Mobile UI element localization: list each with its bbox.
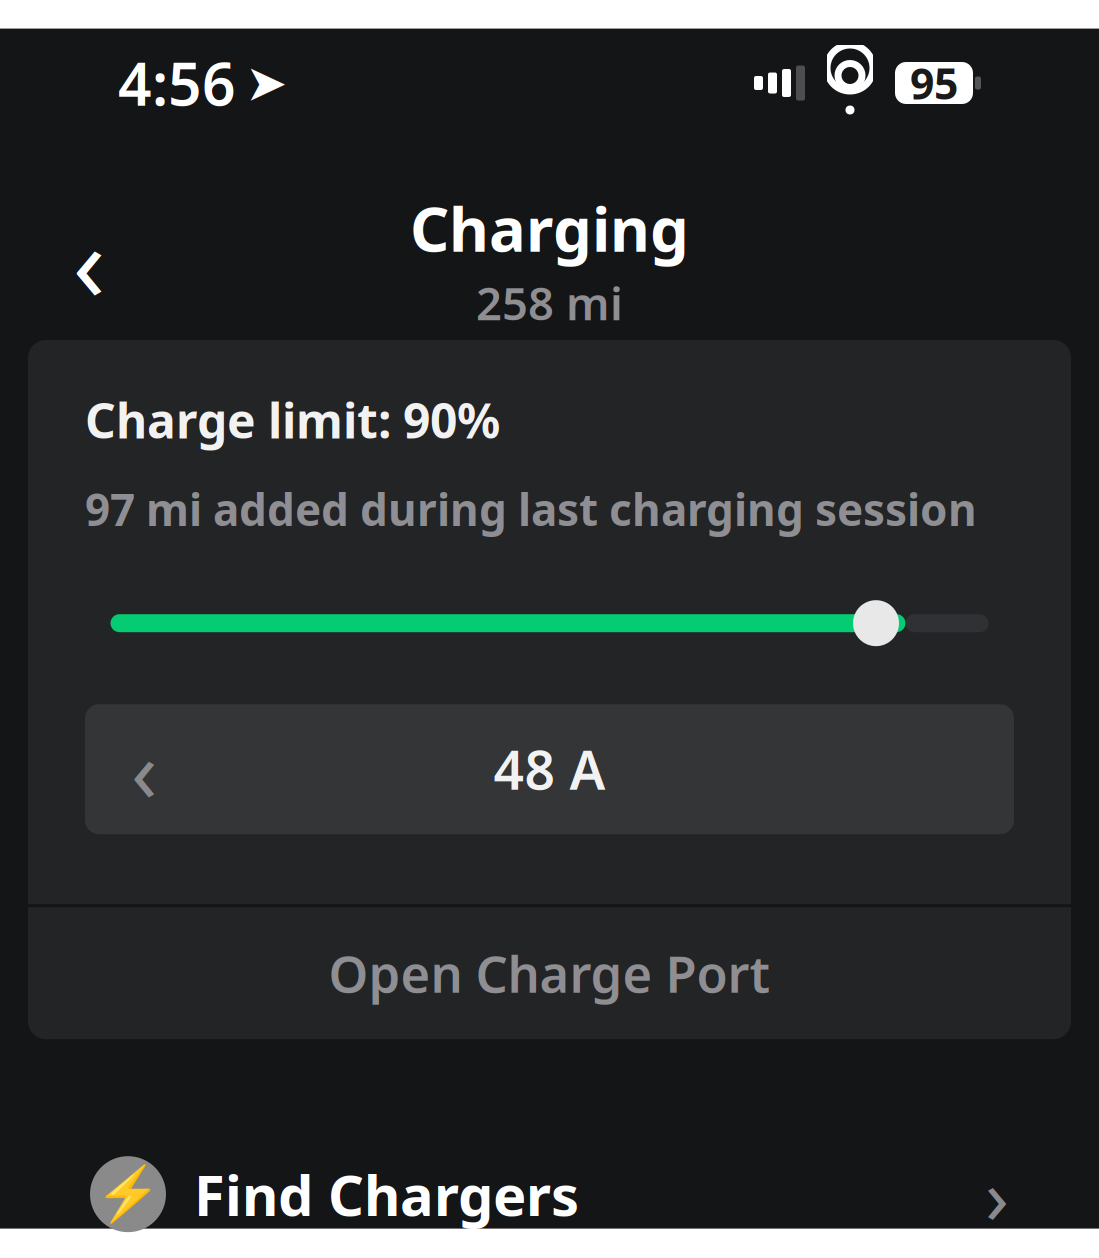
staticText: 4:56 bbox=[118, 44, 236, 122]
button[interactable]: 48 A bbox=[85, 704, 1014, 834]
staticText: 258 mi bbox=[476, 273, 623, 333]
staticText: Charge limit: 90% bbox=[85, 388, 500, 452]
button[interactable]: Open Charge Port bbox=[28, 907, 1071, 1039]
staticText: Find Chargers bbox=[194, 1157, 579, 1231]
staticText: Open Charge Port bbox=[328, 939, 770, 1007]
staticText: ‹ bbox=[131, 712, 157, 826]
staticText: ⚡ bbox=[95, 1164, 161, 1225]
staticText: 95 bbox=[910, 55, 958, 111]
staticText: 48 A bbox=[493, 734, 605, 805]
staticText: 97 mi added during last charging session bbox=[85, 480, 977, 538]
button[interactable]: ⚡ bbox=[0, 1139, 1099, 1249]
staticText: ➤ bbox=[245, 54, 287, 112]
staticText: Charging bbox=[410, 187, 689, 269]
button[interactable]: Back bbox=[46, 217, 132, 303]
staticText: › bbox=[985, 1143, 1009, 1245]
staticText: ‹ bbox=[72, 189, 105, 331]
